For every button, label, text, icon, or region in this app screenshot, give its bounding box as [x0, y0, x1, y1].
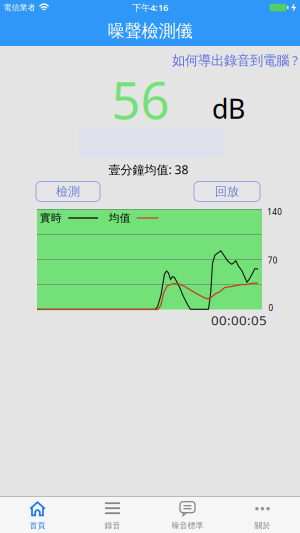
- staticText: 56: [111, 66, 169, 133]
- staticText: 如何導出錄音到電腦 ?: [172, 51, 298, 69]
- button[interactable]: 回放: [194, 181, 260, 201]
- staticText: dB: [212, 91, 245, 126]
- staticText: 電信業者: [3, 3, 35, 12]
- staticText: 下午4:16: [132, 1, 168, 14]
- button[interactable]: 噪音標準: [150, 497, 225, 533]
- staticText: 檢測: [56, 184, 80, 199]
- staticText: 回放: [215, 184, 239, 199]
- staticText: 錄音: [104, 521, 120, 530]
- staticText: 關於: [254, 521, 270, 530]
- staticText: 噪音標準: [171, 521, 203, 530]
- staticText: 0: [268, 303, 273, 313]
- staticText: 140: [267, 207, 282, 217]
- button[interactable]: 如何導出錄音到電腦 ?: [3, 51, 298, 69]
- staticText: 均值: [109, 211, 131, 224]
- staticText: 首頁: [29, 521, 45, 530]
- button[interactable]: 檢測: [36, 181, 100, 201]
- button[interactable]: 關於: [225, 497, 300, 533]
- button[interactable]: 錄音: [75, 497, 150, 533]
- staticText: 實時: [40, 211, 62, 224]
- staticText: 壹分鐘均值: 38: [108, 161, 188, 177]
- staticText: 00:00:05: [211, 311, 267, 329]
- staticText: 噪聲檢測儀: [107, 20, 192, 42]
- staticText: 70: [268, 255, 278, 266]
- button[interactable]: 首頁: [0, 497, 75, 533]
